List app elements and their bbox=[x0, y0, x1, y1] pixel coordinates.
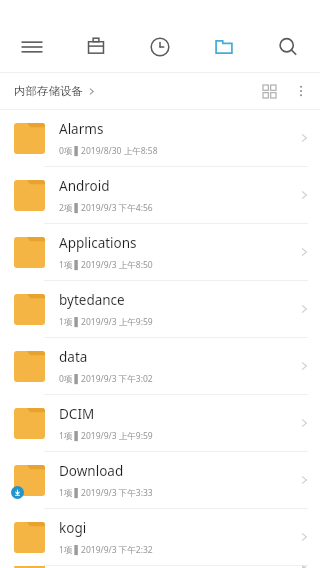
staticText: DCIM bbox=[59, 405, 95, 423]
staticText: 1项 ▌2019/9/3 上午9:59 bbox=[59, 316, 153, 328]
button[interactable]: Applications bbox=[0, 224, 320, 280]
button[interactable]: kogi bbox=[0, 509, 320, 565]
button[interactable]: Android bbox=[0, 167, 320, 223]
button[interactable]: Download bbox=[0, 452, 320, 508]
staticText: 1项 ▌2019/9/3 下午2:32 bbox=[59, 544, 153, 556]
staticText: 0项 ▌2019/8/30 上午8:58 bbox=[59, 145, 158, 157]
staticText: 内部存储设备 bbox=[14, 84, 83, 98]
staticText: bytedance bbox=[59, 291, 125, 309]
button[interactable]: bytedance bbox=[0, 281, 320, 337]
staticText: 0项 ▌2019/9/3 下午3:02 bbox=[59, 373, 153, 385]
button[interactable]: DCIM bbox=[0, 395, 320, 451]
button[interactable]: 内部存储设备 bbox=[14, 84, 96, 98]
staticText: kogi bbox=[59, 519, 87, 537]
button[interactable]: Files bbox=[192, 22, 256, 72]
button[interactable]: Recent bbox=[128, 22, 192, 72]
staticText: 1项 ▌2019/9/3 上午8:50 bbox=[59, 259, 153, 271]
staticText: Alarms bbox=[59, 120, 104, 138]
button[interactable]: More options bbox=[286, 74, 316, 108]
button[interactable]: mipush bbox=[0, 566, 320, 568]
staticText: Android bbox=[59, 177, 110, 195]
staticText: Applications bbox=[59, 234, 137, 252]
staticText: 1项 ▌2019/9/3 上午9:59 bbox=[59, 430, 153, 442]
staticText: 2项 ▌2019/9/3 下午4:56 bbox=[59, 202, 153, 214]
button[interactable]: Alarms bbox=[0, 110, 320, 166]
button[interactable]: Menu bbox=[0, 22, 64, 72]
button[interactable]: Cleanup bbox=[64, 22, 128, 72]
button[interactable]: Grid view bbox=[252, 74, 286, 108]
staticText: Download bbox=[59, 462, 124, 480]
button[interactable]: data bbox=[0, 338, 320, 394]
staticText: data bbox=[59, 348, 88, 366]
staticText: 1项 ▌2019/9/3 下午3:33 bbox=[59, 487, 153, 499]
button[interactable]: Search bbox=[256, 22, 320, 72]
